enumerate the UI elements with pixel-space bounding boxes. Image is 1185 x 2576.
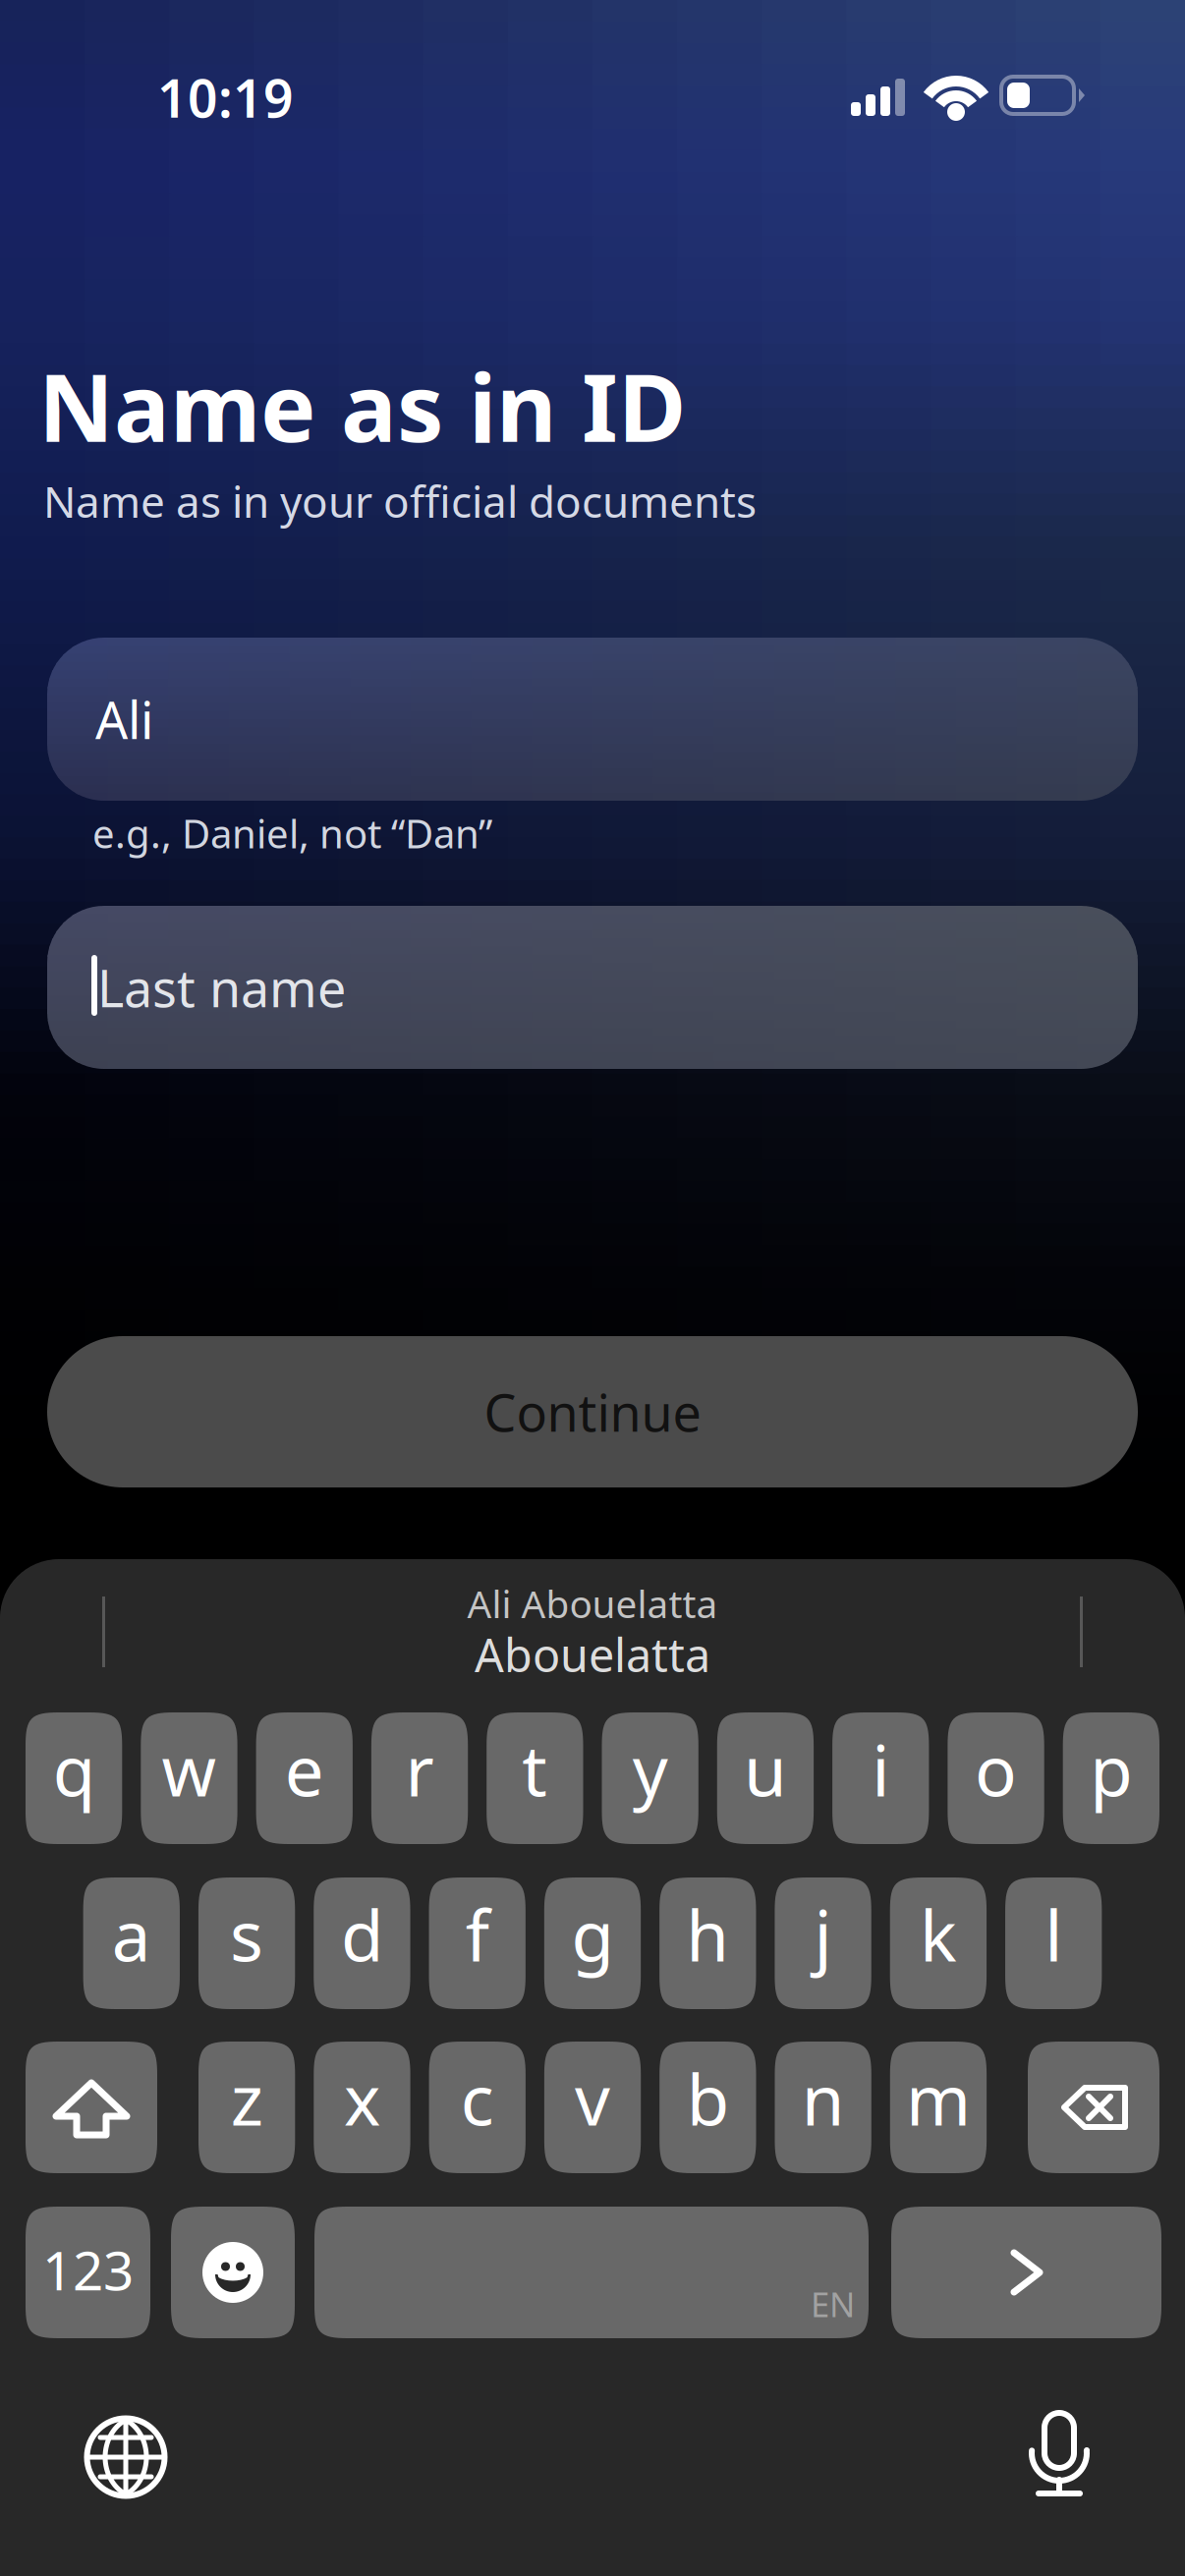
staticText: Name as in ID [38, 344, 686, 467]
button[interactable]: i [832, 1712, 929, 1844]
button[interactable]: Return [891, 2207, 1161, 2338]
staticText: f [465, 1888, 489, 1981]
button[interactable]: j [775, 1877, 871, 2009]
button[interactable]: n [775, 2042, 871, 2173]
button[interactable]: t [487, 1712, 583, 1844]
staticText: 123 [42, 2234, 134, 2305]
staticText: z [231, 2052, 263, 2145]
staticText: v [575, 2052, 610, 2145]
staticText: w [162, 1723, 217, 1815]
staticText: y [632, 1723, 668, 1815]
staticText: t [522, 1723, 548, 1815]
button[interactable]: Continue [47, 1336, 1138, 1487]
button[interactable]: l [1005, 1877, 1102, 2009]
button[interactable]: g [544, 1877, 641, 2009]
staticText: m [906, 2052, 971, 2145]
button[interactable]: 123 [26, 2207, 150, 2338]
staticText: k [920, 1888, 957, 1981]
button[interactable]: a [83, 1877, 180, 2009]
staticText: 10:19 [157, 62, 294, 132]
staticText: Abouelatta [475, 1624, 710, 1685]
staticText: Ali [95, 685, 153, 753]
staticText: Continue [484, 1378, 701, 1446]
button[interactable]: b [660, 2042, 756, 2173]
button[interactable]: h [659, 1877, 756, 2009]
button[interactable]: s [198, 1877, 295, 2009]
button[interactable]: Delete [1028, 2042, 1159, 2173]
staticText: e [285, 1723, 324, 1815]
button[interactable]: k [890, 1877, 987, 2009]
button[interactable]: f [429, 1877, 525, 2009]
button[interactable]: Last name [47, 906, 1138, 1069]
button[interactable]: z [198, 2042, 295, 2173]
staticText: Ali Abouelatta [467, 1578, 718, 1629]
button[interactable]: space [314, 2207, 869, 2338]
staticText: Last name [97, 953, 346, 1021]
staticText: j [814, 1888, 832, 1981]
button[interactable]: r [371, 1712, 468, 1844]
staticText: n [801, 2052, 845, 2145]
button[interactable]: v [544, 2042, 641, 2173]
button[interactable]: w [141, 1712, 237, 1844]
staticText: a [112, 1888, 151, 1981]
staticText: g [571, 1888, 614, 1981]
staticText: b [687, 2052, 729, 2145]
staticText: Name as in your official documents [43, 472, 757, 530]
button[interactable]: Ali Abouelatta [0, 1586, 1185, 1621]
staticText: x [344, 2052, 380, 2145]
button[interactable]: d [314, 1877, 410, 2009]
button[interactable]: y [602, 1712, 698, 1844]
button[interactable]: e [256, 1712, 353, 1844]
staticText: s [230, 1888, 263, 1981]
button[interactable]: p [1063, 1712, 1159, 1844]
button[interactable]: c [429, 2042, 526, 2173]
button[interactable]: q [26, 1712, 122, 1844]
button[interactable]: m [890, 2042, 987, 2173]
staticText: q [53, 1723, 95, 1815]
button[interactable]: Shift [26, 2042, 157, 2173]
button[interactable]: Emoji [171, 2207, 295, 2338]
staticText: o [975, 1723, 1017, 1815]
button[interactable]: x [314, 2042, 410, 2173]
staticText: l [1045, 1888, 1062, 1981]
staticText: e.g., Daniel, not “Dan” [92, 807, 492, 859]
staticText: u [744, 1723, 787, 1815]
staticText: p [1090, 1723, 1132, 1815]
button[interactable]: Ali [47, 638, 1138, 801]
staticText: c [461, 2052, 494, 2145]
button[interactable]: Dictate [1024, 2409, 1095, 2499]
staticText: i [872, 1723, 889, 1815]
button[interactable]: u [717, 1712, 814, 1844]
button[interactable]: o [948, 1712, 1044, 1844]
button[interactable]: Next keyboard [85, 2417, 166, 2497]
button[interactable]: Abouelatta [0, 1634, 1185, 1675]
staticText: r [405, 1723, 434, 1815]
staticText: EN [811, 2281, 855, 2326]
staticText: h [686, 1888, 729, 1981]
staticText: d [341, 1888, 383, 1981]
